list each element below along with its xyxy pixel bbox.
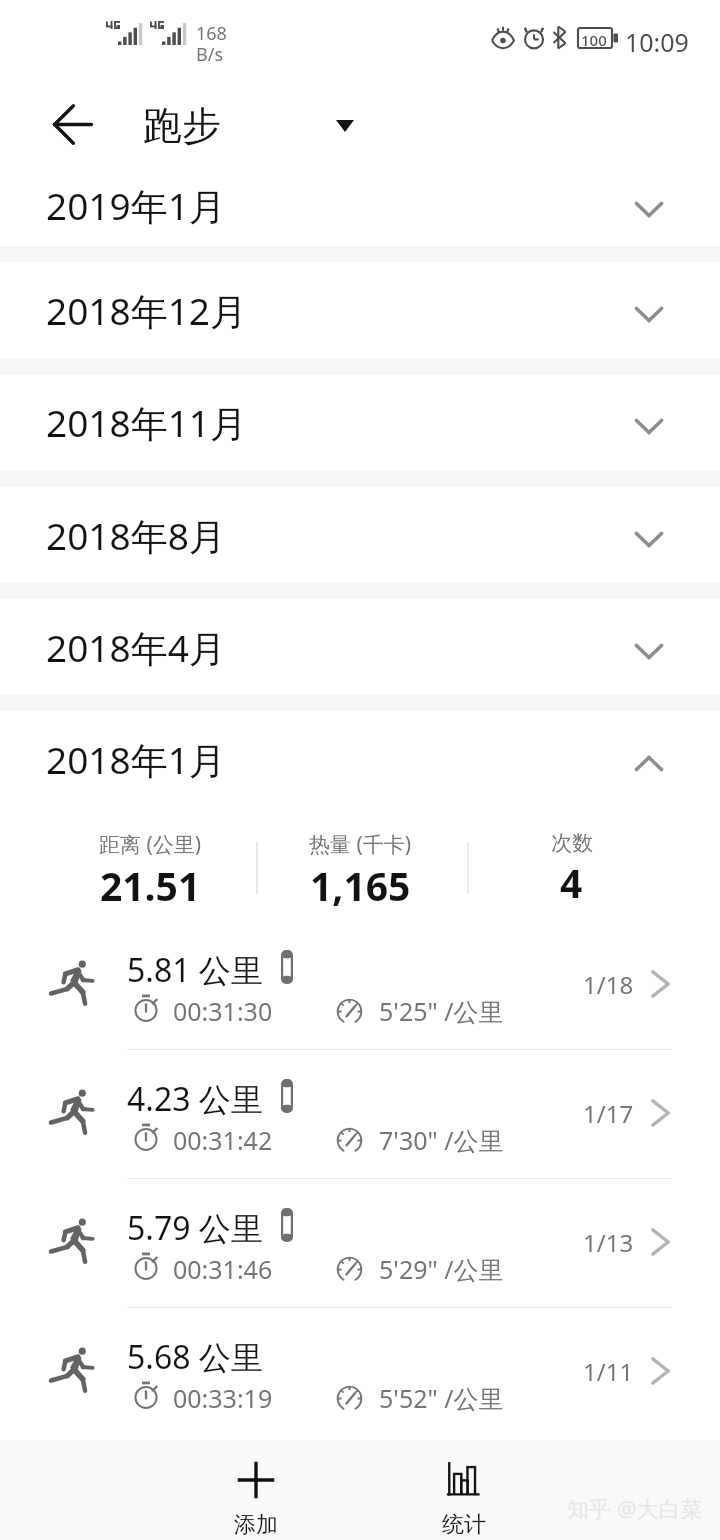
button[interactable]: 2018年11月	[0, 374, 720, 471]
button[interactable]: 2018年12月	[0, 262, 720, 359]
button[interactable]: 2018年8月	[0, 487, 720, 584]
staticText: 距离 (公里)	[99, 830, 202, 859]
staticText: 100	[581, 30, 607, 50]
staticText: 2019年1月	[46, 180, 226, 231]
button[interactable]: 4.23 公里	[0, 1049, 720, 1176]
staticText: 00:31:30	[173, 994, 273, 1028]
staticText: 热量 (千卡)	[309, 830, 412, 859]
staticText: 5'29" /公里	[379, 1252, 504, 1286]
staticText: 00:31:46	[173, 1252, 273, 1286]
staticText: 1,165	[310, 859, 411, 912]
staticText: 21.51	[100, 859, 201, 912]
staticText: 5'52" /公里	[379, 1381, 504, 1415]
staticText: 2018年11月	[46, 397, 247, 448]
staticText: 1/18	[583, 968, 634, 1001]
staticText: 次数	[551, 830, 593, 856]
button[interactable]: 5.81 公里	[0, 920, 720, 1047]
staticText: 1/17	[583, 1097, 634, 1130]
staticText: 2018年1月	[46, 734, 226, 785]
staticText: 00:33:19	[173, 1381, 273, 1415]
staticText: 统计	[442, 1511, 486, 1539]
staticText: 知乎 @大白菜	[567, 1493, 703, 1523]
button[interactable]: 添加	[196, 1461, 316, 1539]
staticText: 2018年8月	[46, 510, 226, 561]
staticText: 跑步	[143, 101, 221, 150]
staticText: 4	[560, 856, 583, 909]
button[interactable]: Select sport type	[315, 96, 375, 156]
staticText: 10:09	[625, 25, 689, 59]
button[interactable]: 统计	[404, 1461, 524, 1539]
staticText: 添加	[234, 1511, 278, 1539]
staticText: 00:31:42	[173, 1123, 273, 1157]
staticText: 5'25" /公里	[379, 994, 504, 1028]
staticText: 5.81 公里	[127, 948, 263, 992]
staticText: 7'30" /公里	[379, 1123, 504, 1157]
staticText: 5.68 公里	[127, 1335, 263, 1379]
staticText: 168 B/s	[196, 21, 227, 67]
staticText: 1/11	[583, 1355, 634, 1388]
staticText: 4.23 公里	[127, 1077, 263, 1121]
staticText: 1/13	[583, 1226, 634, 1259]
staticText: 2018年4月	[46, 622, 226, 673]
button[interactable]: 5.79 公里	[0, 1178, 720, 1305]
button[interactable]: 5.68 公里	[0, 1307, 720, 1434]
staticText: 5.79 公里	[127, 1206, 263, 1250]
staticText: 2018年12月	[46, 285, 247, 336]
button[interactable]: 2019年1月	[0, 165, 720, 246]
button[interactable]: Back	[43, 94, 103, 154]
button[interactable]: 2018年1月	[0, 711, 720, 808]
button[interactable]: 2018年4月	[0, 599, 720, 696]
